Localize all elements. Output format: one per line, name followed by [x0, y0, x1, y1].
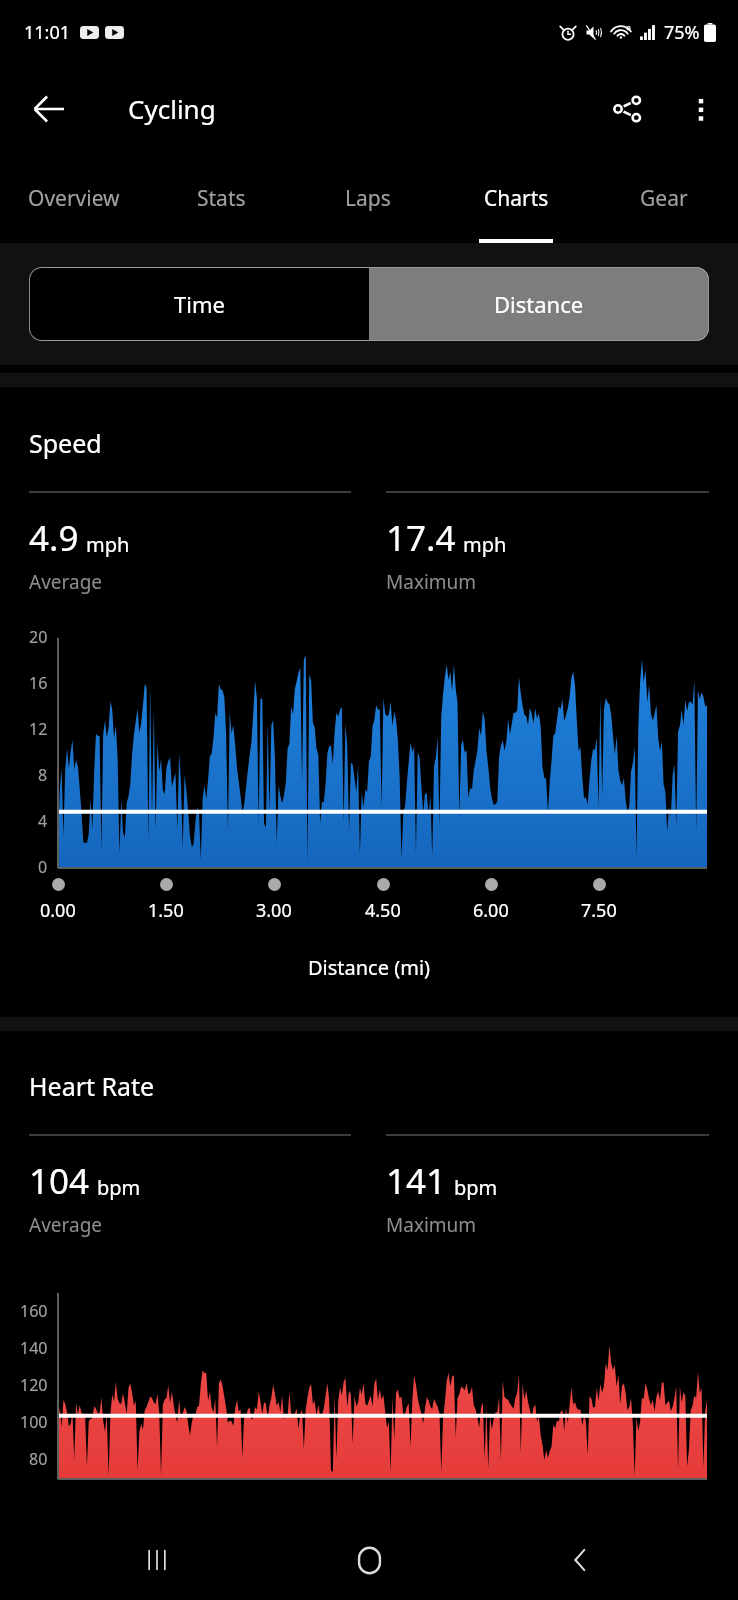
staticText: Maximum	[386, 569, 477, 595]
button[interactable]: Gear	[590, 153, 738, 243]
button[interactable]: Home	[314, 1520, 424, 1600]
staticText: 6.00	[473, 898, 509, 923]
staticText: 0.00	[40, 898, 76, 923]
staticText: 4	[38, 810, 48, 832]
staticText: 1.50	[148, 898, 184, 923]
staticText: mph	[86, 531, 130, 558]
staticText: 140	[20, 1337, 48, 1359]
staticText: Heart Rate	[29, 1069, 155, 1103]
button[interactable]: Stats	[147, 153, 294, 243]
staticText: Charts	[484, 184, 549, 213]
staticText: Average	[29, 1212, 103, 1238]
staticText: Speed	[29, 426, 102, 460]
staticText: 17.4	[386, 514, 456, 562]
staticText: 0	[38, 856, 48, 878]
button[interactable]: More options	[664, 72, 738, 146]
button[interactable]: Overview	[0, 153, 147, 243]
staticText: Laps	[345, 184, 391, 213]
staticText: Distance	[494, 289, 584, 319]
button[interactable]: Distance	[369, 267, 709, 341]
staticText: 3.00	[256, 898, 292, 923]
button[interactable]: Back	[12, 72, 86, 146]
staticText: 160	[20, 1300, 48, 1322]
staticText: Overview	[28, 184, 120, 213]
staticText: Average	[29, 569, 103, 595]
staticText: 4.9	[29, 514, 79, 562]
button[interactable]: Back	[526, 1520, 636, 1600]
button[interactable]: Laps	[294, 153, 442, 243]
button[interactable]: Share	[590, 72, 664, 146]
staticText: 141	[386, 1157, 447, 1205]
staticText: 16	[29, 672, 48, 694]
staticText: Time	[174, 289, 225, 319]
staticText: 120	[20, 1374, 48, 1396]
staticText: 11:01	[24, 20, 71, 45]
staticText: 12	[29, 718, 48, 740]
staticText: Distance (mi)	[0, 954, 738, 981]
staticText: Stats	[197, 184, 246, 213]
button[interactable]: Charts	[442, 153, 590, 243]
staticText: Gear	[640, 184, 688, 213]
staticText: Maximum	[386, 1212, 477, 1238]
staticText: 100	[20, 1411, 48, 1433]
staticText: mph	[463, 531, 507, 558]
staticText: 80	[29, 1448, 48, 1470]
staticText: 104	[29, 1157, 90, 1205]
staticText: 4.50	[365, 898, 401, 923]
staticText: 75%	[664, 20, 700, 45]
staticText: 7.50	[581, 898, 617, 923]
staticText: bpm	[97, 1174, 141, 1201]
staticText: Cycling	[128, 91, 216, 126]
staticText: 20	[29, 626, 48, 648]
button[interactable]: Time	[29, 267, 369, 341]
staticText: bpm	[454, 1174, 498, 1201]
staticText: 8	[38, 764, 48, 786]
button[interactable]: Recent apps	[102, 1520, 212, 1600]
